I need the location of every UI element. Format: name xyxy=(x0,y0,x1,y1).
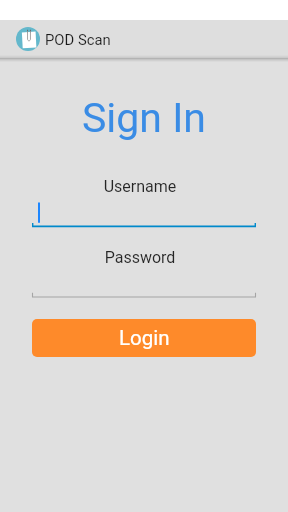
staticText: Password xyxy=(0,248,284,267)
staticText: POD Scan xyxy=(45,31,111,48)
button[interactable]: Login xyxy=(32,319,256,357)
staticText: Sign In xyxy=(0,94,288,142)
staticText: Login xyxy=(119,326,170,350)
staticText: Username xyxy=(0,177,284,196)
button[interactable]: Password xyxy=(0,243,288,303)
button[interactable]: POD Scan app icon xyxy=(16,27,40,51)
button[interactable]: Username xyxy=(0,172,288,232)
